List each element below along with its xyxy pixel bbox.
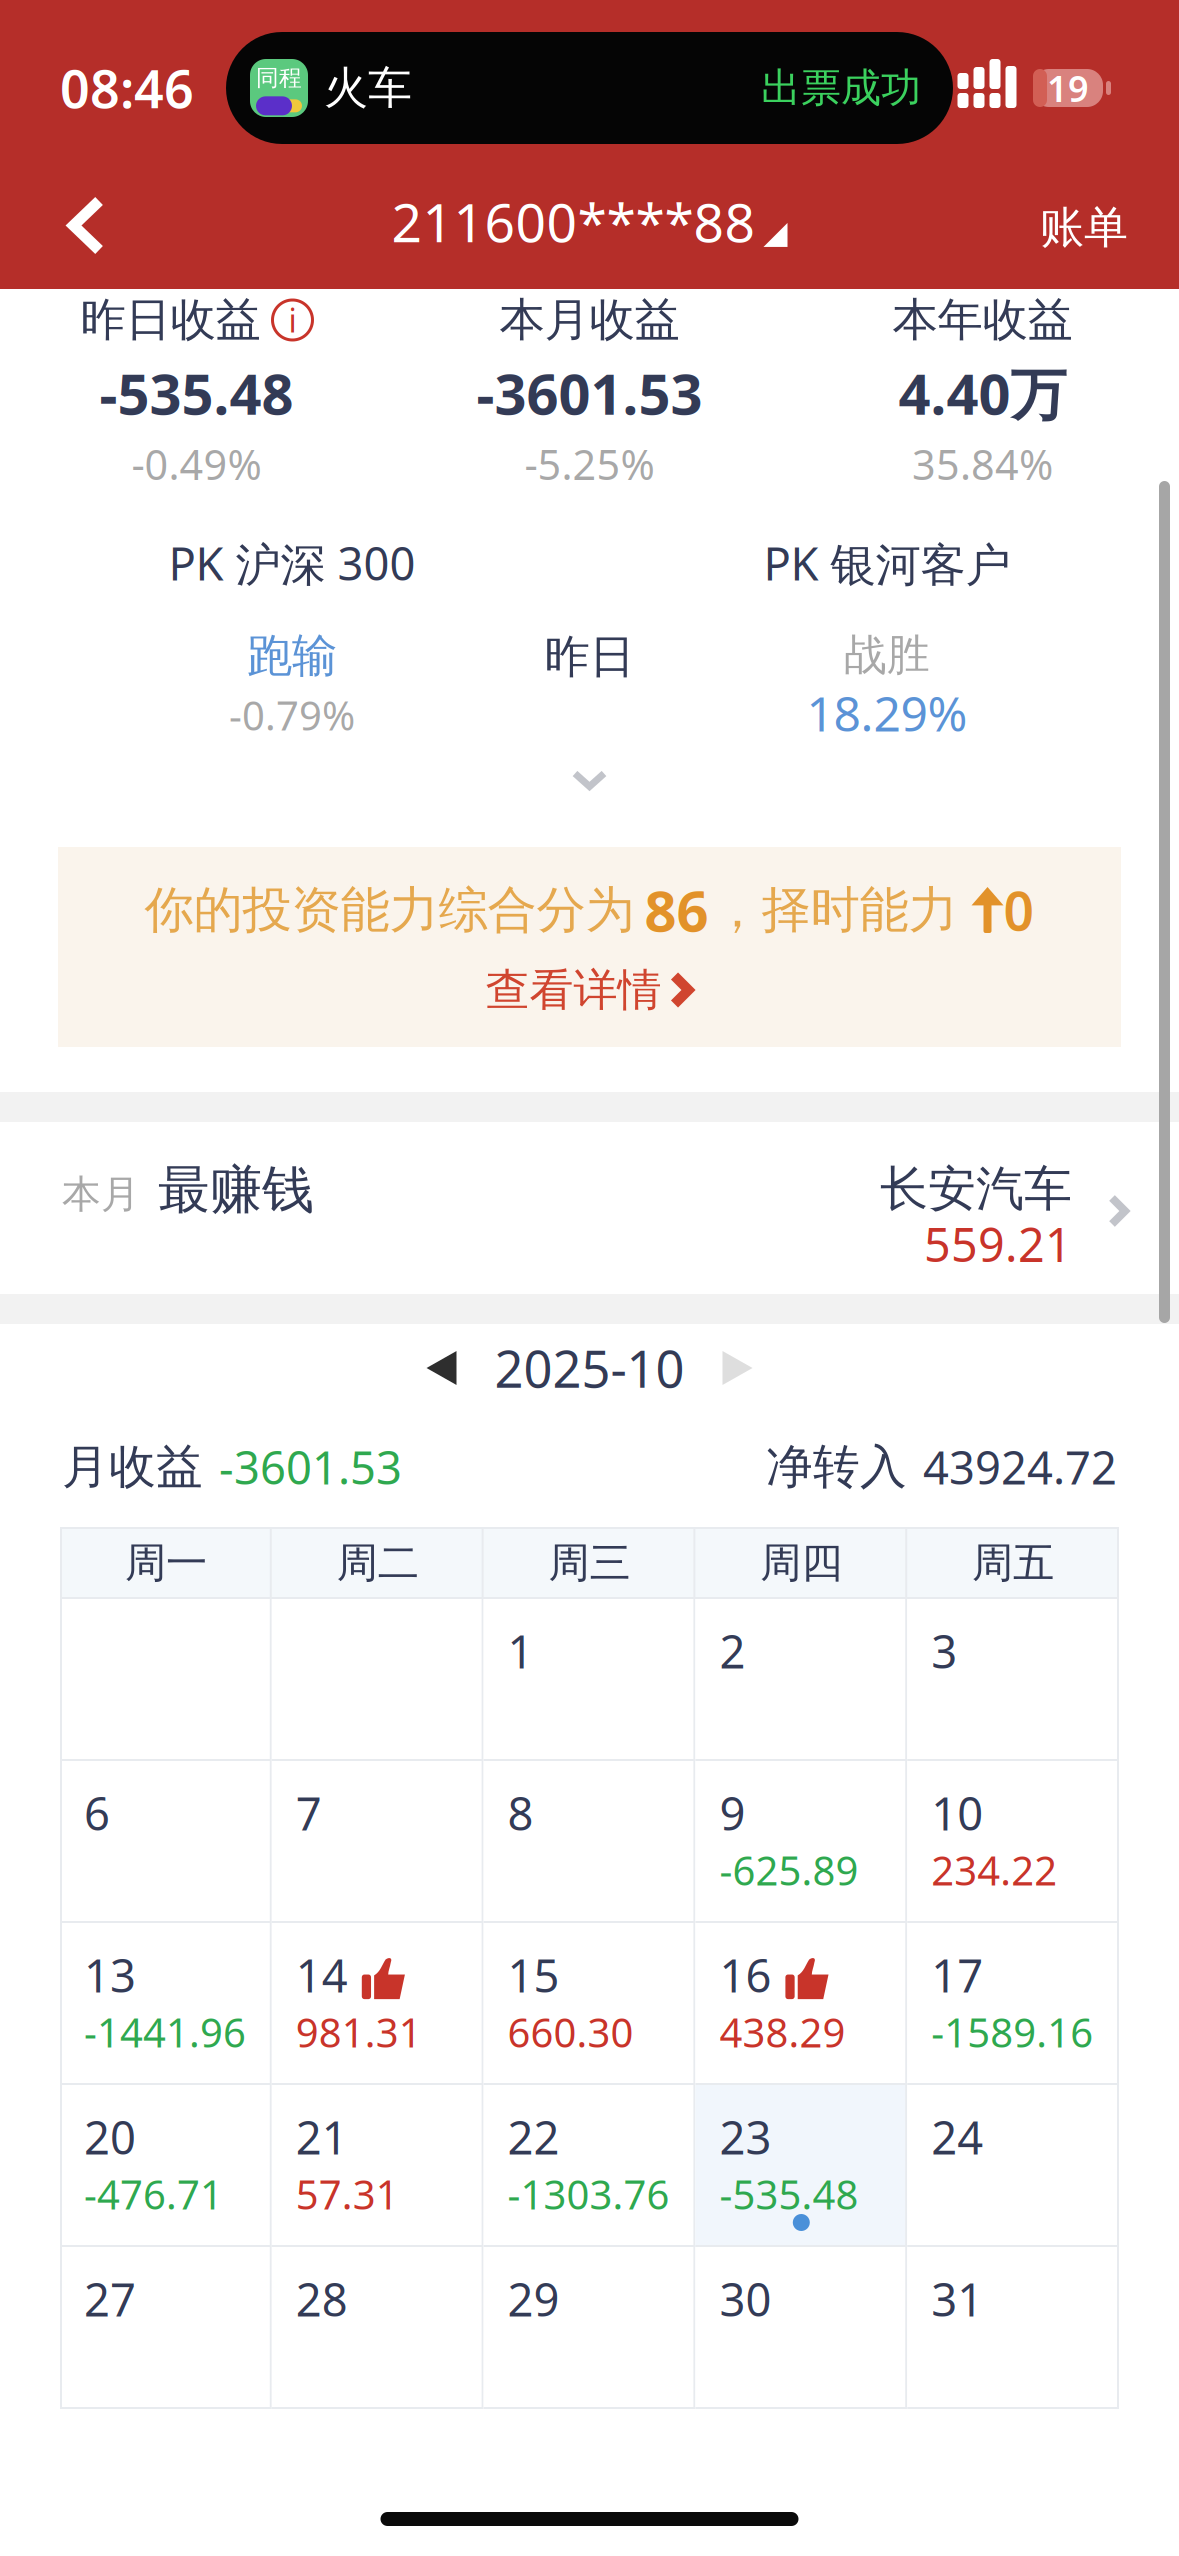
staticText: 660.30 — [508, 2005, 634, 2058]
staticText: 长安汽车 — [880, 1159, 1072, 1218]
staticText: 86 — [644, 873, 708, 947]
staticText: 本月 — [62, 1171, 140, 1218]
staticText: 同程 — [256, 64, 302, 92]
staticText: 28 — [296, 2269, 348, 2329]
staticText: -476.71 — [84, 2167, 223, 2220]
staticText: -1589.16 — [931, 2005, 1093, 2058]
staticText: 08:46 — [60, 53, 194, 123]
staticText: 35.84% — [912, 437, 1053, 491]
staticText: 0 — [1003, 875, 1034, 945]
button[interactable]: 本月 — [0, 1122, 1179, 1294]
staticText: 周三 — [548, 1538, 630, 1588]
staticText: 你的投资能力综合分为 — [144, 880, 634, 940]
staticText: 净转入 — [766, 1438, 907, 1496]
button[interactable]: 下个月 — [706, 1335, 768, 1401]
staticText: 234.22 — [931, 1843, 1057, 1896]
staticText: 周二 — [337, 1538, 419, 1588]
staticText: -535.48 — [719, 2167, 858, 2220]
staticText: -625.89 — [719, 1843, 858, 1896]
staticText: 本年收益 — [892, 292, 1072, 348]
staticText: 30 — [719, 2269, 771, 2329]
button[interactable]: 展开 — [501, 748, 677, 812]
staticText: 14 — [296, 1945, 348, 2005]
staticText: 战胜 — [844, 629, 930, 681]
staticText: 2 — [719, 1621, 745, 1681]
staticText: -0.49% — [131, 437, 261, 491]
staticText: 3 — [931, 1621, 957, 1681]
staticText: 出票成功 — [761, 63, 921, 112]
staticText: 1 — [508, 1621, 534, 1681]
staticText: PK 沪深 300 — [168, 533, 415, 593]
staticText: 本月收益 — [499, 292, 679, 348]
staticText: 昨日收益 — [80, 292, 260, 348]
staticText: -3601.53 — [476, 356, 702, 430]
staticText: 17 — [931, 1945, 983, 2005]
staticText: 20 — [84, 2107, 136, 2167]
staticText: 4.40万 — [898, 356, 1066, 430]
staticText: 8 — [508, 1783, 534, 1843]
staticText: 23 — [719, 2107, 771, 2167]
staticText: 22 — [508, 2107, 560, 2167]
staticText: 31 — [931, 2269, 983, 2329]
staticText: 57.31 — [296, 2167, 399, 2220]
staticText: 最赚钱 — [158, 1158, 314, 1222]
button[interactable]: 211600****88 — [371, 180, 807, 285]
button[interactable]: 账单 — [1004, 182, 1179, 282]
staticText: 周五 — [972, 1538, 1054, 1588]
staticText: 16 — [719, 1945, 771, 2005]
staticText: i — [288, 299, 296, 341]
staticText: 周一 — [125, 1538, 207, 1588]
staticText: 21 — [296, 2107, 348, 2167]
staticText: 查看详情 — [485, 963, 661, 1017]
staticText: -535.48 — [99, 356, 293, 430]
staticText: PK 银河客户 — [763, 533, 1010, 593]
staticText: 559.21 — [924, 1213, 1072, 1275]
button[interactable]: 返回 — [0, 185, 144, 279]
staticText: 昨日 — [544, 629, 634, 685]
staticText: 6 — [84, 1783, 110, 1843]
staticText: 10 — [931, 1783, 983, 1843]
staticText: 火车 — [324, 61, 412, 115]
button[interactable]: 你的投资能力综合分为 — [58, 847, 1121, 1047]
staticText: 19 — [1047, 64, 1089, 112]
staticText: -5.25% — [524, 437, 654, 491]
staticText: -0.79% — [229, 688, 355, 741]
button[interactable]: 上个月 — [410, 1335, 472, 1401]
staticText: 24 — [931, 2107, 983, 2167]
staticText: 27 — [84, 2269, 136, 2329]
staticText: ，择时能力 — [712, 880, 957, 940]
staticText: 43924.72 — [923, 1437, 1117, 1497]
staticText: 账单 — [1040, 200, 1128, 254]
staticText: 月收益 — [62, 1438, 203, 1496]
staticText: 211600****88 — [391, 186, 755, 257]
staticText: 7 — [296, 1783, 322, 1843]
staticText: 981.31 — [296, 2005, 422, 2058]
staticText: 29 — [508, 2269, 560, 2329]
staticText: 周四 — [760, 1538, 842, 1588]
staticText: 9 — [719, 1783, 745, 1843]
staticText: 2025-10 — [494, 1334, 684, 1402]
staticText: 15 — [508, 1945, 560, 2005]
staticText: -1441.96 — [84, 2005, 246, 2058]
staticText: 18.29% — [806, 681, 967, 745]
staticText: 跑输 — [247, 628, 337, 684]
staticText: 13 — [84, 1945, 136, 2005]
staticText: -1303.76 — [508, 2167, 670, 2220]
staticText: -3601.53 — [219, 1437, 402, 1497]
staticText: 438.29 — [719, 2005, 845, 2058]
